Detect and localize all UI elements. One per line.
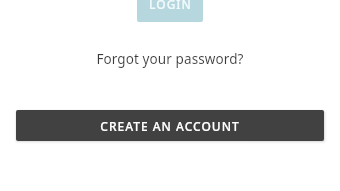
staticText: LOGIN	[149, 0, 192, 12]
staticText: Forgot your password?	[96, 50, 244, 68]
button[interactable]: LOGIN	[137, 0, 203, 22]
staticText: CREATE AN ACCOUNT	[100, 118, 240, 134]
button[interactable]: CREATE AN ACCOUNT	[16, 110, 324, 141]
button[interactable]: Forgot your password?	[0, 48, 340, 70]
